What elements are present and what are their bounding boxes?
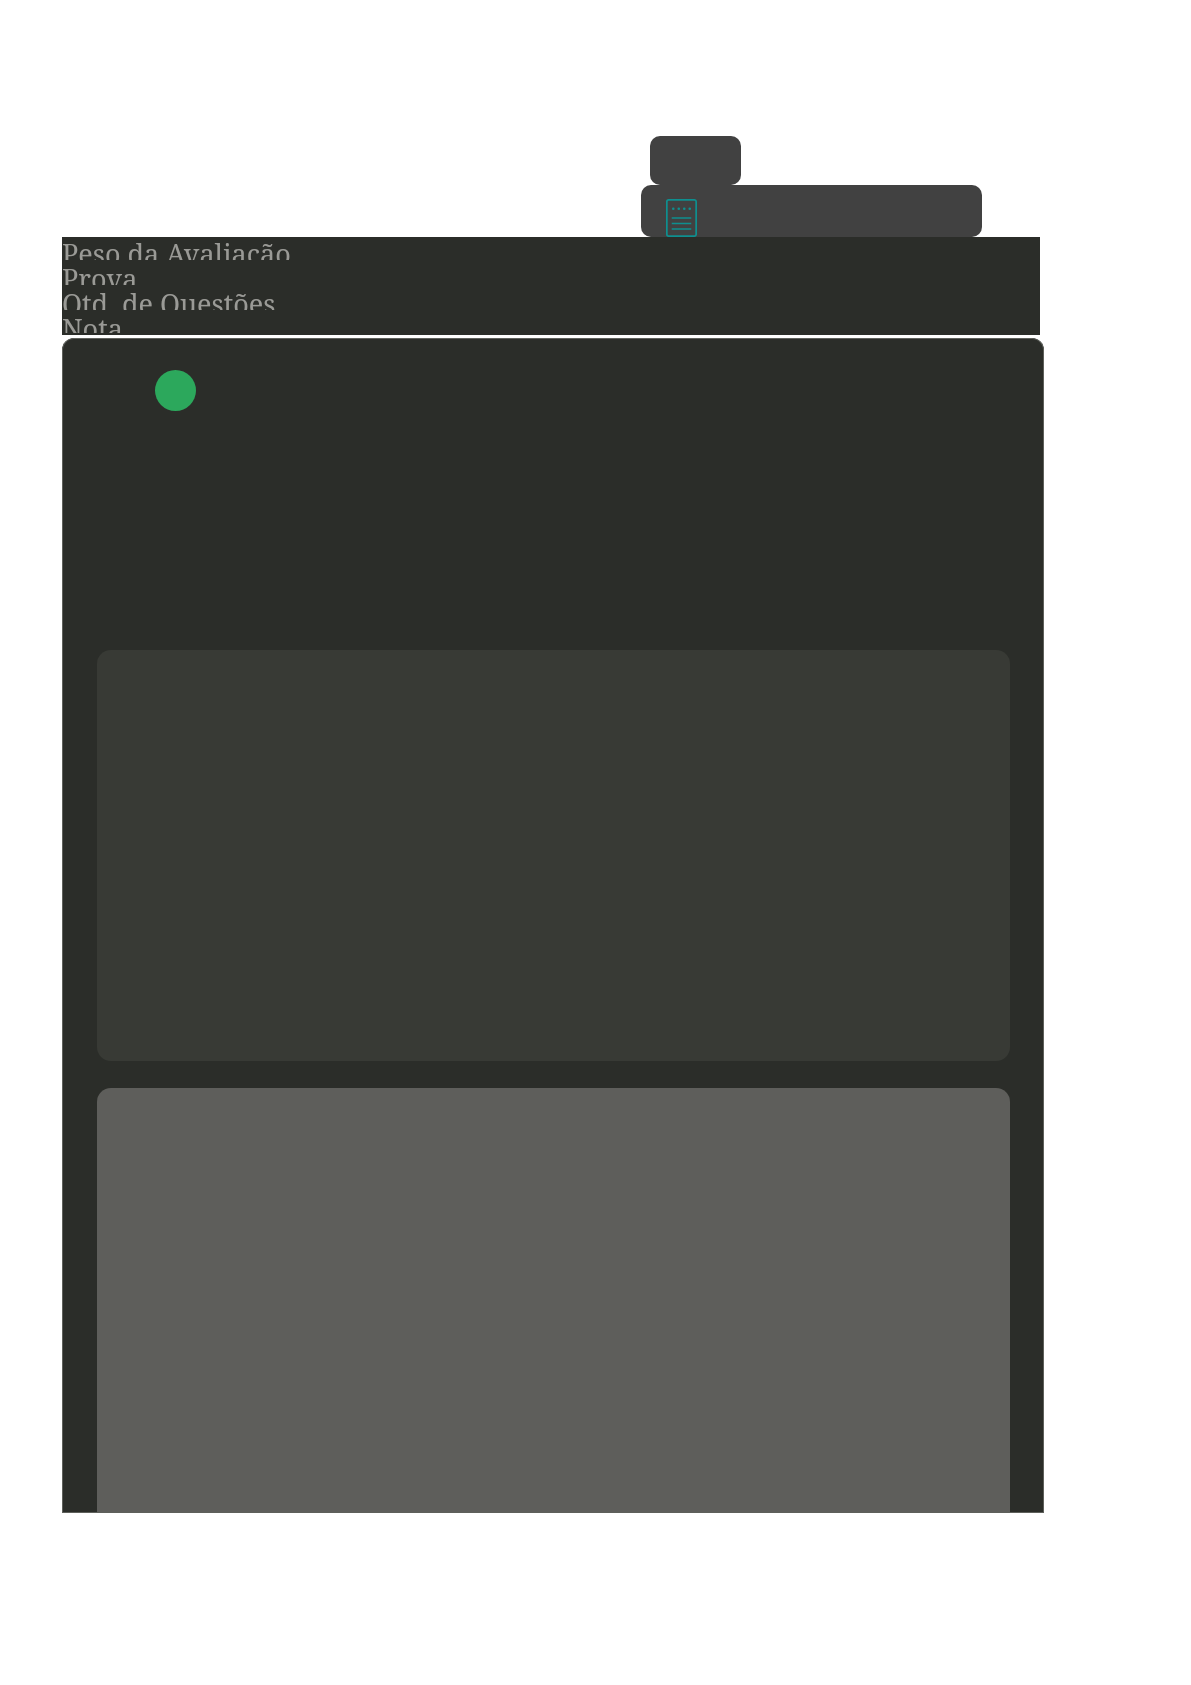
staticText: Peso da Avaliação	[62, 235, 291, 260]
staticText: Qtd. de Questões	[62, 285, 276, 310]
staticText: Prova	[62, 260, 138, 285]
staticText: Nota	[62, 310, 123, 333]
button[interactable]: Menu chip	[650, 136, 741, 185]
button[interactable]: Status approved	[155, 370, 196, 411]
button[interactable]: Status approved	[62, 338, 1044, 1513]
button[interactable]: Questions document	[641, 185, 982, 237]
